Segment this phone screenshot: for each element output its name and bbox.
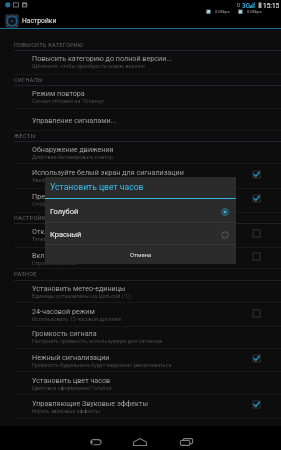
staticText: ↗ — [206, 9, 211, 14]
staticText: Повысить категорию до полной версии... — [32, 54, 173, 62]
button[interactable] — [0, 51, 281, 74]
staticText: Отображать предупреждение при пропуске — [32, 201, 143, 207]
staticText: Щёлкните, чтобы приобрести новую версию — [32, 63, 145, 69]
button[interactable] — [0, 224, 281, 247]
staticText: Предупреждение о пропущенном сигнале — [32, 192, 175, 200]
staticText: Обнаружение движения — [32, 145, 114, 153]
staticText: Строка состояния — [32, 260, 78, 266]
staticText: Настроить громкость, используемую для си… — [32, 338, 162, 344]
button[interactable] — [0, 373, 281, 395]
staticText: Установить цвет часов — [50, 182, 144, 192]
staticText: Играть звуковые эффекты — [32, 408, 100, 414]
staticText: ↙ — [238, 9, 243, 14]
button[interactable] — [0, 86, 281, 108]
staticText: ПОВЫСИТЬ КАТЕГОРИЮ — [14, 42, 84, 48]
button[interactable] — [0, 165, 281, 188]
staticText: Отключить телефонные звонки — [32, 227, 140, 235]
staticText: Нежный сигнализации — [32, 353, 110, 361]
staticText: Голубой — [50, 207, 79, 216]
button[interactable]: Recent apps — [178, 436, 194, 448]
staticText: ЖЕСТЫ — [14, 133, 36, 139]
button[interactable] — [0, 281, 281, 302]
staticText: Красный — [50, 230, 82, 239]
staticText: Режим повтора — [32, 89, 85, 97]
staticText: Настройки — [22, 17, 57, 25]
button[interactable]: Настройки — [5, 14, 281, 28]
staticText: РАЗНОЕ — [14, 271, 37, 277]
button[interactable]: Голубой — [45, 199, 236, 222]
button[interactable]: Back — [88, 436, 104, 448]
button[interactable]: Home — [132, 436, 148, 448]
button[interactable] — [0, 326, 281, 348]
button[interactable] — [0, 113, 281, 130]
staticText: Используйте белый экран для сигнализации — [32, 168, 184, 176]
staticText: Единицы установлены на Цельсий (°C) — [32, 293, 131, 299]
staticText: 3G — [242, 2, 251, 10]
staticText: Управление сигналами... — [32, 116, 117, 124]
staticText: 0.0Kbps — [247, 9, 262, 14]
staticText: Включить уведомления — [32, 251, 113, 259]
staticText: Увеличивает яркость экрана — [32, 177, 106, 183]
button[interactable] — [0, 304, 281, 326]
staticText: СИГНАЛЫ — [14, 77, 43, 83]
staticText: Цветовое оформление Голубой — [32, 385, 112, 391]
staticText: НАСТРОЙКИ — [14, 215, 50, 221]
staticText: Установить метео-единицы — [32, 284, 126, 292]
staticText: Управляющие Звуковые эффекты — [32, 399, 148, 407]
button[interactable]: Красный — [45, 223, 236, 244]
staticText: Действие Активировать повтор — [32, 154, 113, 160]
button[interactable] — [0, 248, 281, 268]
staticText: Установить цвет часов — [32, 376, 111, 384]
button[interactable] — [0, 189, 281, 212]
button[interactable] — [0, 142, 281, 164]
staticText: Громкость сигнала — [32, 329, 97, 337]
staticText: Громкость будильника будет медленно увел… — [32, 362, 172, 368]
staticText: 24-часовой режим — [32, 307, 95, 315]
staticText: Отмена — [130, 251, 152, 258]
staticText: Телефонные звонки отключены — [32, 236, 114, 242]
button[interactable] — [0, 396, 281, 418]
staticText: Использовать 12-часовой дисплей — [32, 316, 121, 322]
button[interactable] — [0, 350, 281, 372]
staticText: 0 — [237, 2, 241, 8]
button[interactable]: Отмена — [45, 245, 236, 264]
staticText: Сигнал отложен на 10 минут — [32, 98, 105, 104]
staticText: 15:15 — [263, 2, 280, 10]
staticText: 0.0Kbps — [215, 9, 230, 14]
